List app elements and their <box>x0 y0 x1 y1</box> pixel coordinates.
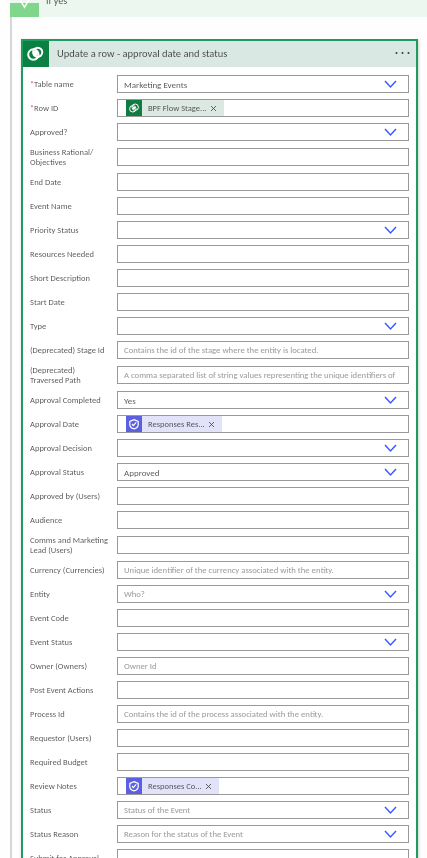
staticText: * <box>30 79 34 89</box>
staticText: Approval Date <box>30 419 79 429</box>
button[interactable]: Approval Completed <box>30 391 409 409</box>
staticText: Contains the id of the stage where the e… <box>124 345 319 356</box>
staticText: Approval Decision <box>30 443 93 453</box>
button[interactable]: Process Id <box>30 705 409 723</box>
button[interactable]: Update a row - approval date and status <box>21 39 418 67</box>
staticText: Update a row - approval date and status <box>57 47 228 60</box>
staticText: Reason for the status of the Event <box>124 829 243 840</box>
staticText: Currency (Currencies) <box>30 565 105 575</box>
button[interactable]: Review Notes <box>30 777 409 795</box>
staticText: Approval Completed <box>30 395 101 405</box>
button[interactable]: Event Status <box>30 633 409 651</box>
staticText: Audience <box>30 515 63 525</box>
button[interactable]: Approved by (Users) <box>30 487 409 505</box>
staticText: Post Event Actions <box>30 685 94 695</box>
staticText: Approved? <box>30 127 68 137</box>
staticText: Start Date <box>30 297 65 307</box>
staticText: Requestor (Users) <box>30 733 92 743</box>
button[interactable]: * <box>30 75 409 93</box>
staticText: Short Description <box>30 273 90 283</box>
button[interactable]: Remove token <box>208 421 215 428</box>
button[interactable]: Comms and Marketing Lead (Users) <box>30 535 409 555</box>
button[interactable]: Remove token <box>205 783 212 790</box>
staticText: (Deprecated) Stage Id <box>30 345 105 355</box>
staticText: Submit for Approval <box>30 853 99 858</box>
staticText: Responses Res... <box>148 419 205 429</box>
button[interactable]: * <box>30 99 409 117</box>
button[interactable]: Resources Needed <box>30 245 409 263</box>
staticText: Approved by (Users) <box>30 491 100 501</box>
button[interactable]: Event Name <box>30 197 409 215</box>
staticText: Process Id <box>30 709 65 719</box>
button[interactable]: Approved? <box>30 123 409 141</box>
button[interactable]: Start Date <box>30 293 409 311</box>
staticText: Resources Needed <box>30 249 94 259</box>
staticText: Owner (Owners) <box>30 661 87 671</box>
button[interactable]: Approval Decision <box>30 439 409 457</box>
staticText: Event Status <box>30 637 73 647</box>
staticText: Required Budget <box>30 757 88 767</box>
staticText: Type <box>30 321 47 331</box>
staticText: BPF Flow Stage... <box>148 103 207 113</box>
button[interactable]: Event Code <box>30 609 409 627</box>
button[interactable]: Currency (Currencies) <box>30 561 409 579</box>
staticText: A comma separated list of string values … <box>124 370 397 381</box>
button[interactable]: Priority Status <box>30 221 409 239</box>
button[interactable]: Approval Date <box>30 415 409 433</box>
staticText: Status <box>30 805 52 815</box>
staticText: Event Name <box>30 201 72 211</box>
staticText: Unique identifier of the currency associ… <box>124 565 334 576</box>
staticText: Yes <box>124 395 136 406</box>
staticText: Approved <box>124 467 160 478</box>
button[interactable]: Status Reason <box>30 825 409 843</box>
staticText: Status of the Event <box>124 805 191 816</box>
staticText: Who? <box>124 589 145 600</box>
button[interactable]: Post Event Actions <box>30 681 409 699</box>
staticText: Approval Status <box>30 467 85 477</box>
button[interactable]: Remove token <box>210 105 217 112</box>
button[interactable]: Approval Status <box>30 463 409 481</box>
button[interactable]: Owner (Owners) <box>30 657 409 675</box>
staticText: Table name <box>34 79 74 89</box>
staticText: Comms and Marketing Lead (Users) <box>30 535 109 555</box>
staticText: Business Rational/Objectives <box>30 147 109 167</box>
staticText: Event Code <box>30 613 69 623</box>
button[interactable]: More options <box>390 41 414 65</box>
staticText: Entity <box>30 589 50 599</box>
staticText: Contains the id of the process associate… <box>124 709 324 720</box>
button[interactable]: Short Description <box>30 269 409 287</box>
staticText: Owner Id <box>124 661 157 672</box>
button[interactable]: (Deprecated) Traversed Path <box>30 365 409 385</box>
button[interactable]: Audience <box>30 511 409 529</box>
staticText: End Date <box>30 177 62 187</box>
staticText: Responses Co... <box>148 781 202 791</box>
button[interactable]: Status <box>30 801 409 819</box>
button[interactable]: Requestor (Users) <box>30 729 409 747</box>
staticText: Review Notes <box>30 781 77 791</box>
button[interactable]: Business Rational/Objectives <box>30 147 409 167</box>
staticText: Marketing Events <box>124 79 188 90</box>
button[interactable]: (Deprecated) Stage Id <box>30 341 409 359</box>
button[interactable]: Entity <box>30 585 409 603</box>
button[interactable]: Collapse branch <box>10 3 39 17</box>
button[interactable]: End Date <box>30 173 409 191</box>
staticText: Status Reason <box>30 829 79 839</box>
button[interactable]: Submit for Approval <box>30 849 409 858</box>
staticText: Row ID <box>34 103 59 113</box>
button[interactable]: Required Budget <box>30 753 409 771</box>
staticText: * <box>30 103 34 113</box>
staticText: (Deprecated) Traversed Path <box>30 365 109 385</box>
button[interactable]: Type <box>30 317 409 335</box>
staticText: If yes <box>46 0 68 6</box>
staticText: Priority Status <box>30 225 79 235</box>
